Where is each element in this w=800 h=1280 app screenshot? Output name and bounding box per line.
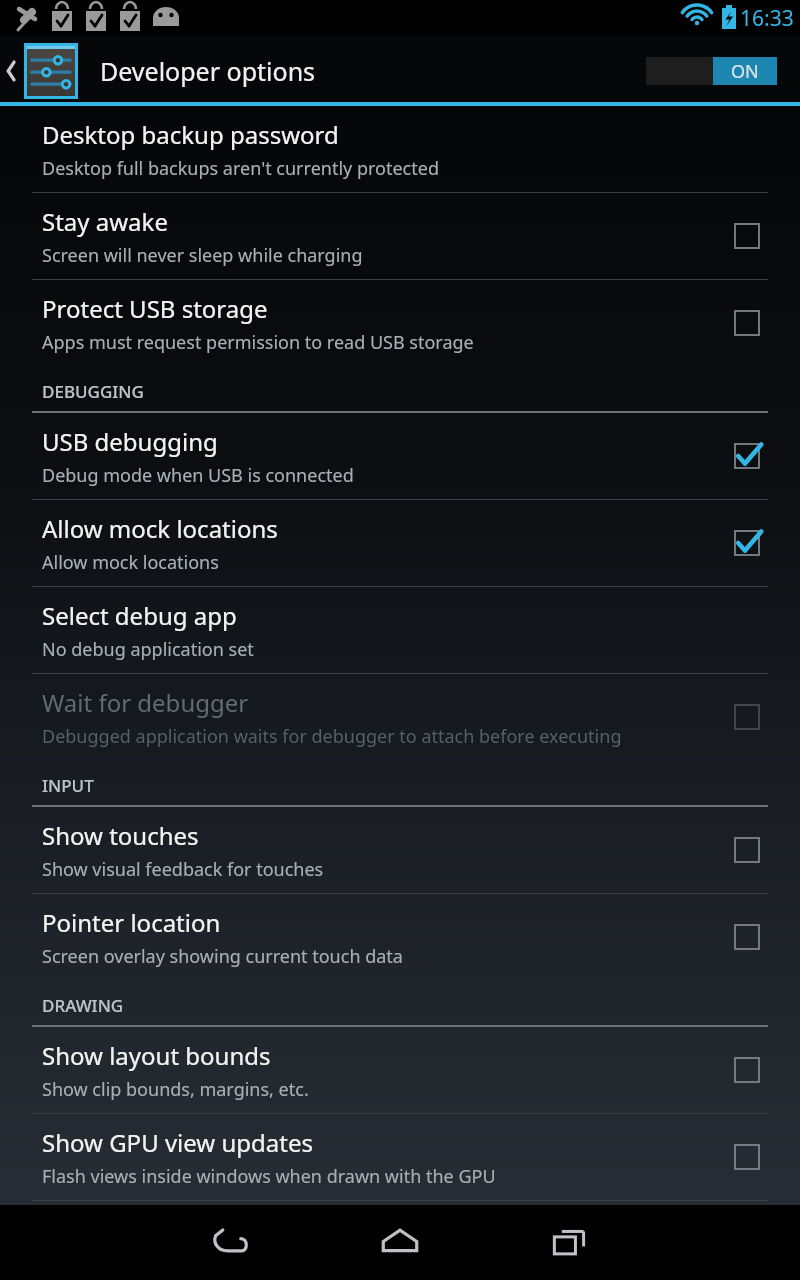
staticText: No debug application set (42, 637, 254, 662)
staticText: Debugged application waits for debugger … (42, 724, 622, 749)
button[interactable]: Protect USB storage (0, 280, 800, 366)
staticText: Wait for debugger (42, 686, 249, 719)
button[interactable]: Select debug app (0, 587, 800, 673)
staticText: Desktop full backups aren't currently pr… (42, 156, 439, 181)
staticText: DEBUGGING (42, 380, 144, 403)
button[interactable]: Recent apps (530, 1205, 610, 1280)
staticText: Show clip bounds, margins, etc. (42, 1077, 309, 1102)
button[interactable]: Checked (726, 435, 768, 477)
button[interactable]: Allow mock locations (0, 500, 800, 586)
staticText: 16:33 (740, 4, 794, 33)
button[interactable]: Unchecked (726, 829, 768, 871)
button[interactable]: Unchecked (726, 215, 768, 257)
staticText: Screen overlay showing current touch dat… (42, 944, 403, 969)
button[interactable]: Show GPU view updates (0, 1114, 800, 1200)
staticText: Select debug app (42, 599, 237, 632)
staticText: Debug mode when USB is connected (42, 463, 354, 488)
button[interactable]: Desktop backup password (0, 106, 800, 192)
button[interactable]: Stay awake (0, 193, 800, 279)
button[interactable]: Unchecked (726, 696, 768, 738)
staticText: ON (731, 59, 759, 84)
button[interactable]: Pointer location (0, 894, 800, 980)
button[interactable]: Unchecked (726, 916, 768, 958)
button[interactable]: Unchecked (726, 1136, 768, 1178)
button[interactable]: Show layout bounds (0, 1027, 800, 1113)
staticText: DRAWING (42, 994, 124, 1017)
button[interactable]: Developer options on (646, 57, 777, 85)
staticText: Stay awake (42, 205, 168, 238)
staticText: Show visual feedback for touches (42, 857, 324, 882)
staticText: Pointer location (42, 906, 221, 939)
staticText: Developer options (100, 54, 316, 88)
staticText: USB debugging (42, 425, 218, 458)
button[interactable]: Show touches (0, 807, 800, 893)
button[interactable]: Unchecked (726, 302, 768, 344)
button[interactable]: Checked (726, 522, 768, 564)
button[interactable]: Home (360, 1205, 440, 1280)
staticText: Show layout bounds (42, 1039, 271, 1072)
staticText: Show GPU view updates (42, 1126, 313, 1159)
staticText: Desktop backup password (42, 118, 339, 151)
staticText: Allow mock locations (42, 512, 278, 545)
staticText: Show touches (42, 819, 199, 852)
staticText: Flash views inside windows when drawn wi… (42, 1164, 496, 1189)
button[interactable]: Wait for debugger (0, 674, 800, 760)
button[interactable]: USB debugging (0, 413, 800, 499)
staticText: Screen will never sleep while charging (42, 243, 363, 268)
button[interactable]: Back (190, 1205, 270, 1280)
staticText: INPUT (42, 774, 94, 797)
staticText: Allow mock locations (42, 550, 219, 575)
staticText: Protect USB storage (42, 292, 268, 325)
staticText: Apps must request permission to read USB… (42, 330, 474, 355)
button[interactable]: Navigate up (0, 41, 84, 101)
button[interactable]: Unchecked (726, 1049, 768, 1091)
